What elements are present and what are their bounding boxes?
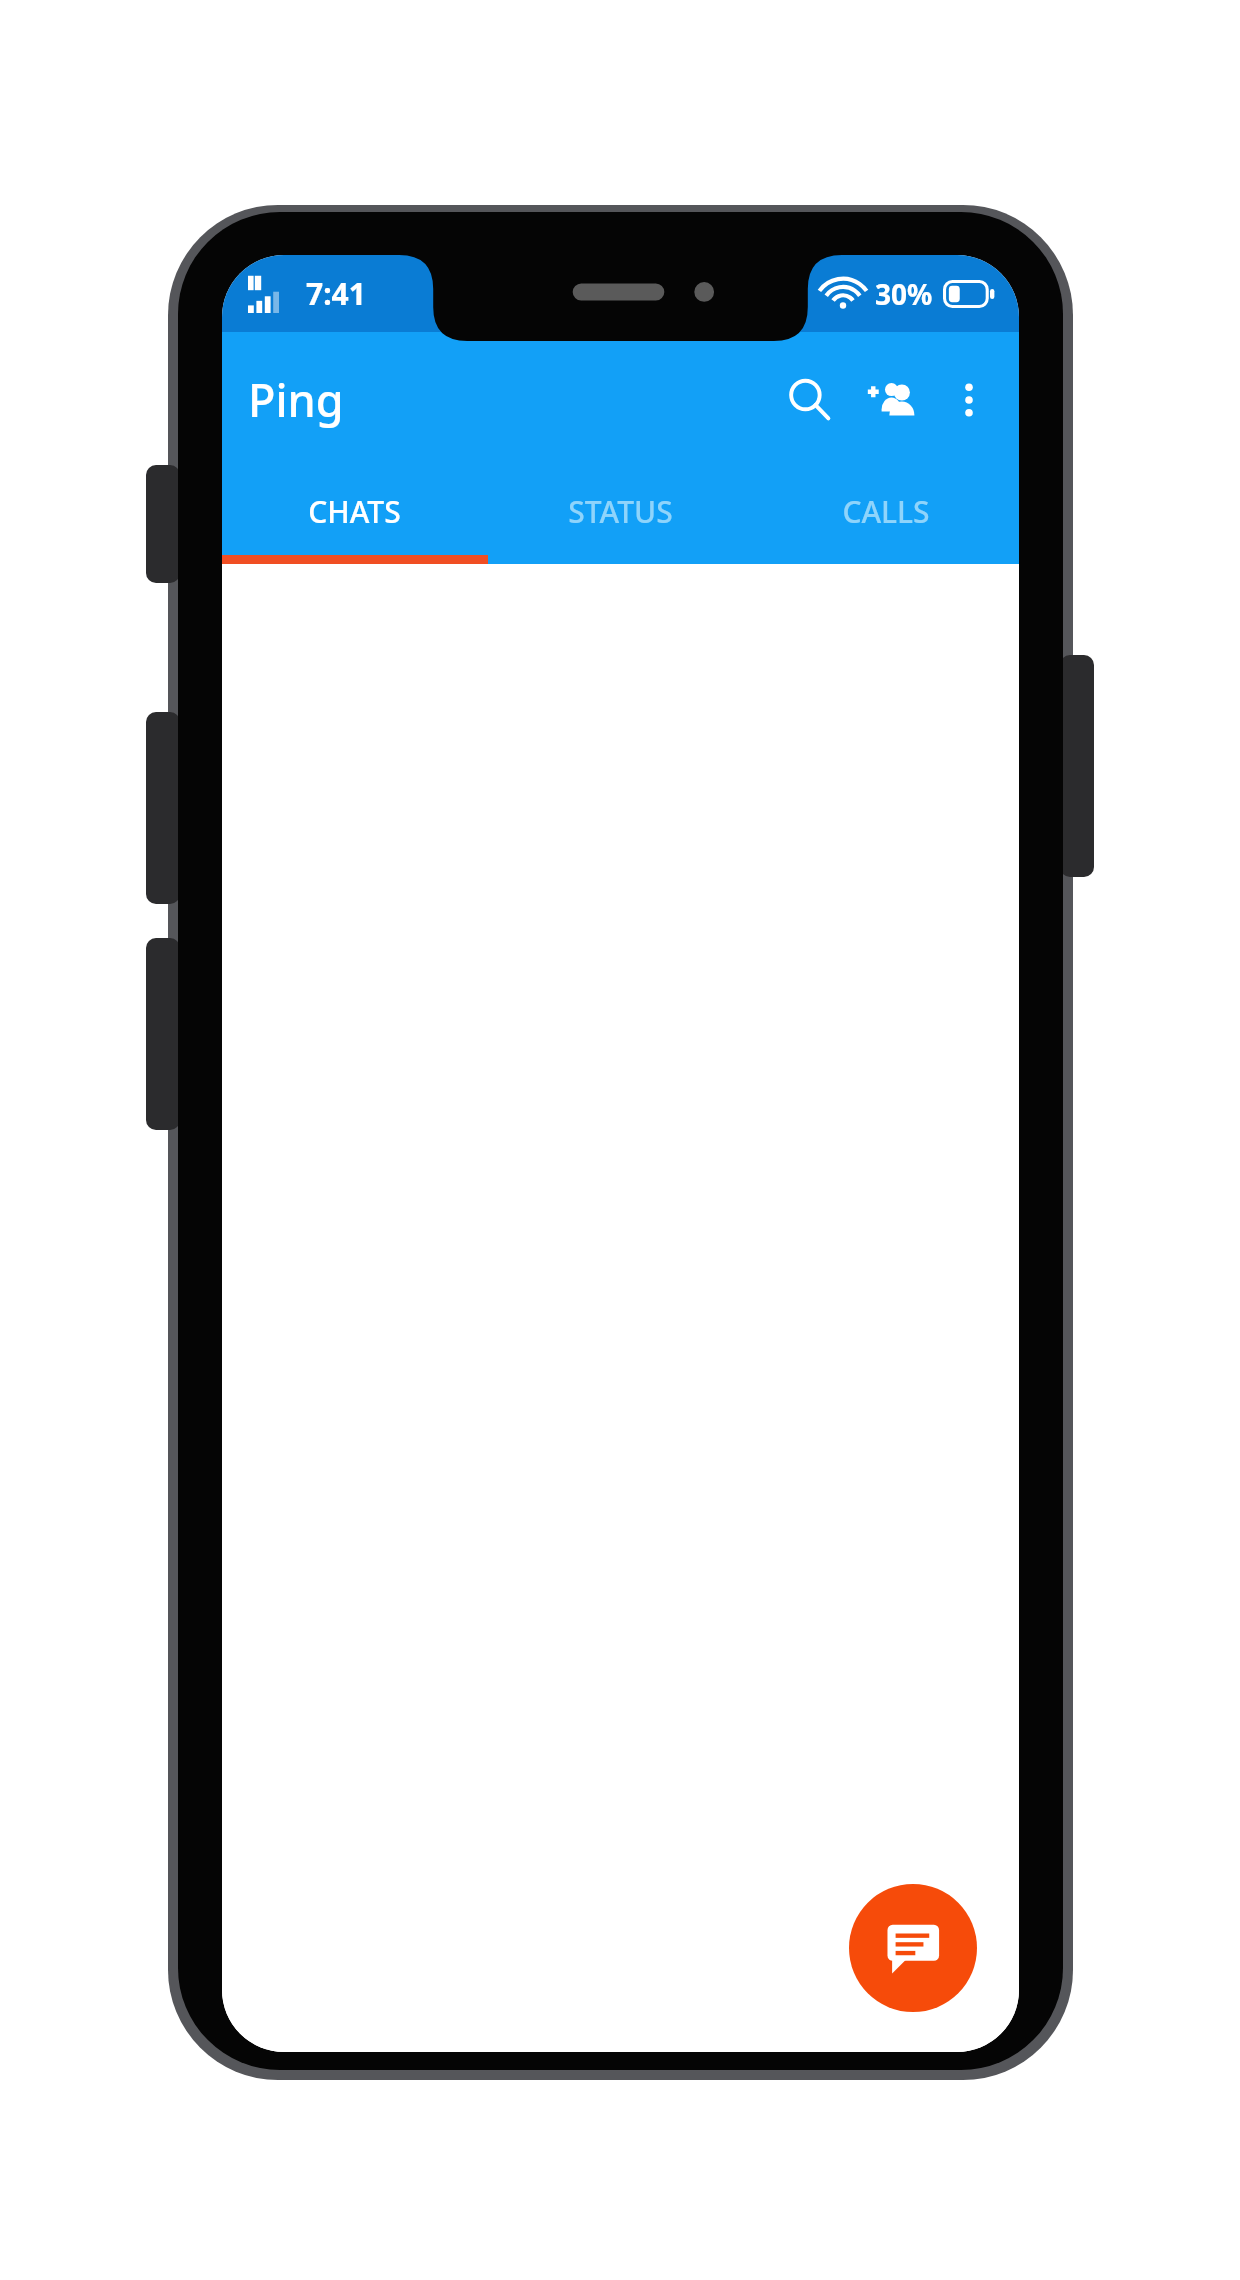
- staticText: CALLS: [842, 491, 930, 532]
- button[interactable]: New chat: [849, 1884, 977, 2012]
- button[interactable]: Add contact: [851, 359, 933, 441]
- staticText: 7:41: [306, 273, 366, 314]
- button[interactable]: CHATS: [222, 467, 487, 555]
- button[interactable]: More options: [933, 364, 1005, 436]
- staticText: 30%: [875, 275, 933, 313]
- staticText: CHATS: [308, 491, 401, 532]
- button[interactable]: Search: [769, 359, 851, 441]
- staticText: STATUS: [568, 491, 673, 532]
- button[interactable]: CALLS: [753, 467, 1019, 555]
- button[interactable]: STATUS: [487, 467, 753, 555]
- staticText: Ping: [248, 369, 344, 430]
